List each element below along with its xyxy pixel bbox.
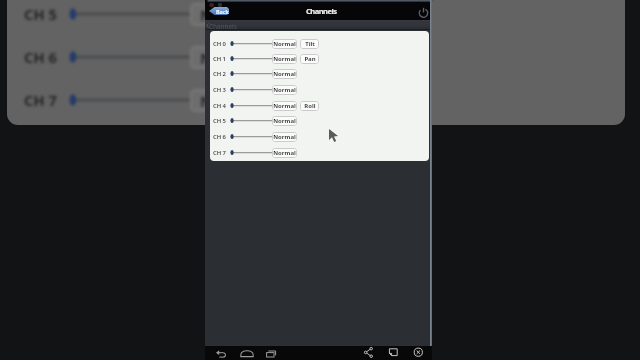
button[interactable]: Normal [272, 39, 297, 49]
staticText: Normal [273, 133, 296, 141]
staticText: N [200, 48, 212, 68]
staticText: CH 4 [213, 102, 226, 110]
button[interactable]: Normal [272, 85, 297, 95]
button[interactable]: Pan [300, 54, 319, 64]
staticText: Roll [304, 102, 316, 110]
button[interactable]: Share [364, 347, 375, 359]
staticText: CH 7 [213, 149, 226, 157]
staticText: CH 6 [24, 47, 57, 67]
staticText: CH 6 [213, 133, 226, 141]
staticText: Normal [273, 149, 296, 157]
staticText: Normal [273, 102, 296, 110]
button[interactable]: Power [417, 6, 430, 19]
staticText: N [200, 5, 212, 25]
staticText: Channels [306, 6, 337, 16]
button[interactable]: Screenshot [389, 347, 400, 359]
staticText: CH 2 [213, 70, 226, 78]
staticText: Normal [273, 117, 296, 125]
button[interactable]: Normal [272, 101, 297, 111]
button[interactable]: Normal [272, 148, 297, 158]
button[interactable]: Normal [272, 116, 297, 126]
staticText: N [200, 91, 212, 111]
staticText: Normal [273, 55, 296, 63]
button[interactable]: Normal [272, 69, 297, 79]
staticText: CH 1 [213, 55, 226, 63]
staticText: Tilt [305, 40, 315, 48]
staticText: CH 3 [213, 86, 226, 94]
button[interactable]: Back [216, 347, 227, 359]
staticText: CH 7 [24, 90, 57, 110]
staticText: CH 0 [213, 40, 226, 48]
button[interactable]: Close [414, 347, 425, 359]
button[interactable]: Normal [272, 54, 297, 64]
staticText: Normal [273, 40, 296, 48]
staticText: Normal [273, 70, 296, 78]
button[interactable]: Recents [266, 347, 277, 359]
staticText: Channels [209, 22, 237, 31]
button[interactable]: Back [209, 6, 229, 16]
button[interactable]: Normal [272, 132, 297, 142]
button[interactable]: Home [240, 347, 254, 359]
staticText: CH 5 [24, 4, 57, 24]
staticText: Pan [304, 55, 316, 63]
staticText: Back [216, 8, 229, 15]
button[interactable]: Tilt [300, 39, 319, 49]
button[interactable]: Roll [300, 101, 319, 111]
staticText: Normal [273, 86, 296, 94]
staticText: CH 5 [213, 117, 226, 125]
